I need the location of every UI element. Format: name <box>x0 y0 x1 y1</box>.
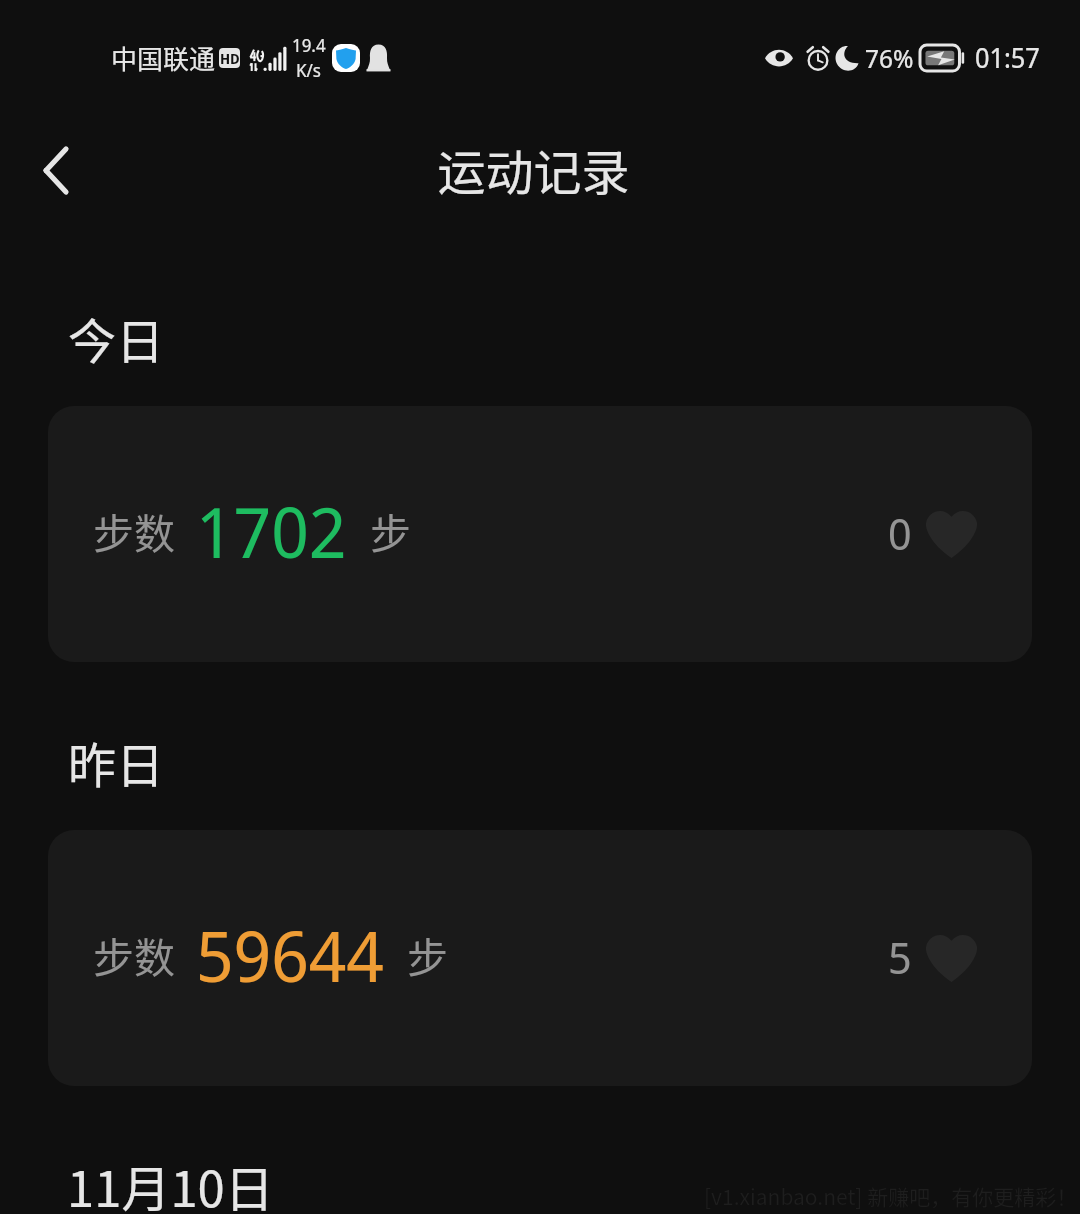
staticText: 今日 <box>68 303 165 373</box>
staticText: 0 <box>888 503 912 563</box>
staticText: HD <box>220 49 240 68</box>
staticText: [v1.xianbao.net] 新赚吧，有你更精彩！ <box>704 1181 1078 1211</box>
button[interactable]: 步数 <box>48 830 1032 1086</box>
staticText: 76% <box>865 40 914 75</box>
staticText: 59644 <box>196 907 384 1002</box>
button[interactable]: Back <box>2 116 110 224</box>
staticText: 步数 <box>93 925 175 984</box>
staticText: K/s <box>296 58 322 83</box>
staticText: 步 <box>370 501 411 560</box>
staticText: 01:57 <box>975 39 1040 76</box>
staticText: 昨日 <box>68 727 165 797</box>
staticText: 步 <box>407 925 448 984</box>
staticText: 运动记录 <box>437 134 630 204</box>
staticText: 中国联通 <box>111 39 216 77</box>
staticText: 1702 <box>196 483 347 578</box>
staticText: 11月10日 <box>67 1150 274 1214</box>
staticText: 5 <box>888 927 912 987</box>
button[interactable]: 步数 <box>48 406 1032 662</box>
staticText: 19.4 <box>292 33 326 58</box>
staticText: 步数 <box>93 501 175 560</box>
